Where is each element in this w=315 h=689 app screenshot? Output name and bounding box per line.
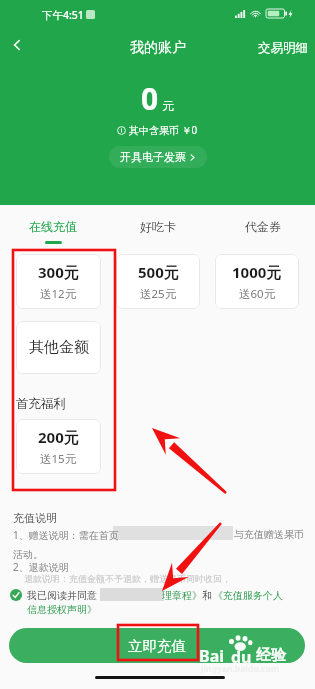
staticText: Bai	[199, 645, 225, 667]
button[interactable]: 代金券	[210, 206, 315, 246]
staticText: 开具电子发票	[120, 150, 186, 164]
button[interactable]: 立即充值	[9, 628, 305, 663]
staticText: 退款说明：充值金额不予退款，赠送果币同时收回，	[24, 573, 231, 584]
staticText: 活动。	[13, 548, 43, 561]
button[interactable]: 返回	[2, 30, 32, 60]
staticText: 经验	[256, 646, 286, 665]
button[interactable]	[8, 586, 307, 617]
staticText: du	[231, 646, 252, 668]
staticText: 交易明细	[258, 40, 308, 56]
staticText: 送15元	[40, 451, 77, 467]
staticText: 好吃卡	[140, 219, 176, 234]
staticText: 信息授权声明》	[27, 603, 97, 616]
button[interactable]: 其他金额	[16, 321, 101, 374]
staticText: 理章程》	[162, 589, 202, 602]
staticText: 首充福利	[16, 396, 66, 412]
staticText: 和	[202, 589, 212, 602]
staticText: 充值说明	[13, 511, 57, 525]
staticText: 其他金额	[29, 338, 89, 357]
staticText: 送12元	[40, 286, 77, 302]
button[interactable]: 好吃卡	[105, 206, 210, 246]
button[interactable]: 在线充值	[0, 206, 105, 246]
staticText: 《充值服务个人	[213, 589, 283, 602]
staticText: 其中含果币 ￥0	[129, 123, 198, 137]
staticText: 500元	[138, 262, 179, 282]
button[interactable]: 开具电子发票	[109, 146, 207, 168]
staticText: 我已阅读并同意	[27, 589, 97, 602]
button[interactable]: 500元	[116, 254, 200, 309]
staticText: 下午4:51	[42, 8, 84, 22]
staticText: 与充值赠送果币	[234, 528, 304, 541]
staticText: 1、赠送说明：需在首页	[13, 528, 119, 542]
staticText: 元	[162, 98, 174, 113]
button[interactable]: 1000元	[215, 254, 299, 309]
staticText: 代金券	[245, 219, 281, 234]
button[interactable]: 交易明细	[252, 34, 314, 62]
staticText: 我的账户	[130, 39, 186, 57]
staticText: 在线充值	[29, 219, 77, 234]
staticText: 送60元	[239, 286, 276, 302]
staticText: 送25元	[140, 286, 177, 302]
staticText: 0	[141, 78, 159, 119]
staticText: 1000元	[232, 262, 282, 282]
button[interactable]: 200元	[16, 419, 101, 474]
staticText: 2、退款说明	[13, 560, 69, 574]
staticText: 300元	[38, 262, 79, 282]
staticText: 200元	[38, 427, 79, 447]
staticText: 立即充值	[128, 637, 186, 655]
staticText: jingyan.baidu.com	[201, 663, 280, 675]
button[interactable]: 300元	[16, 254, 101, 309]
